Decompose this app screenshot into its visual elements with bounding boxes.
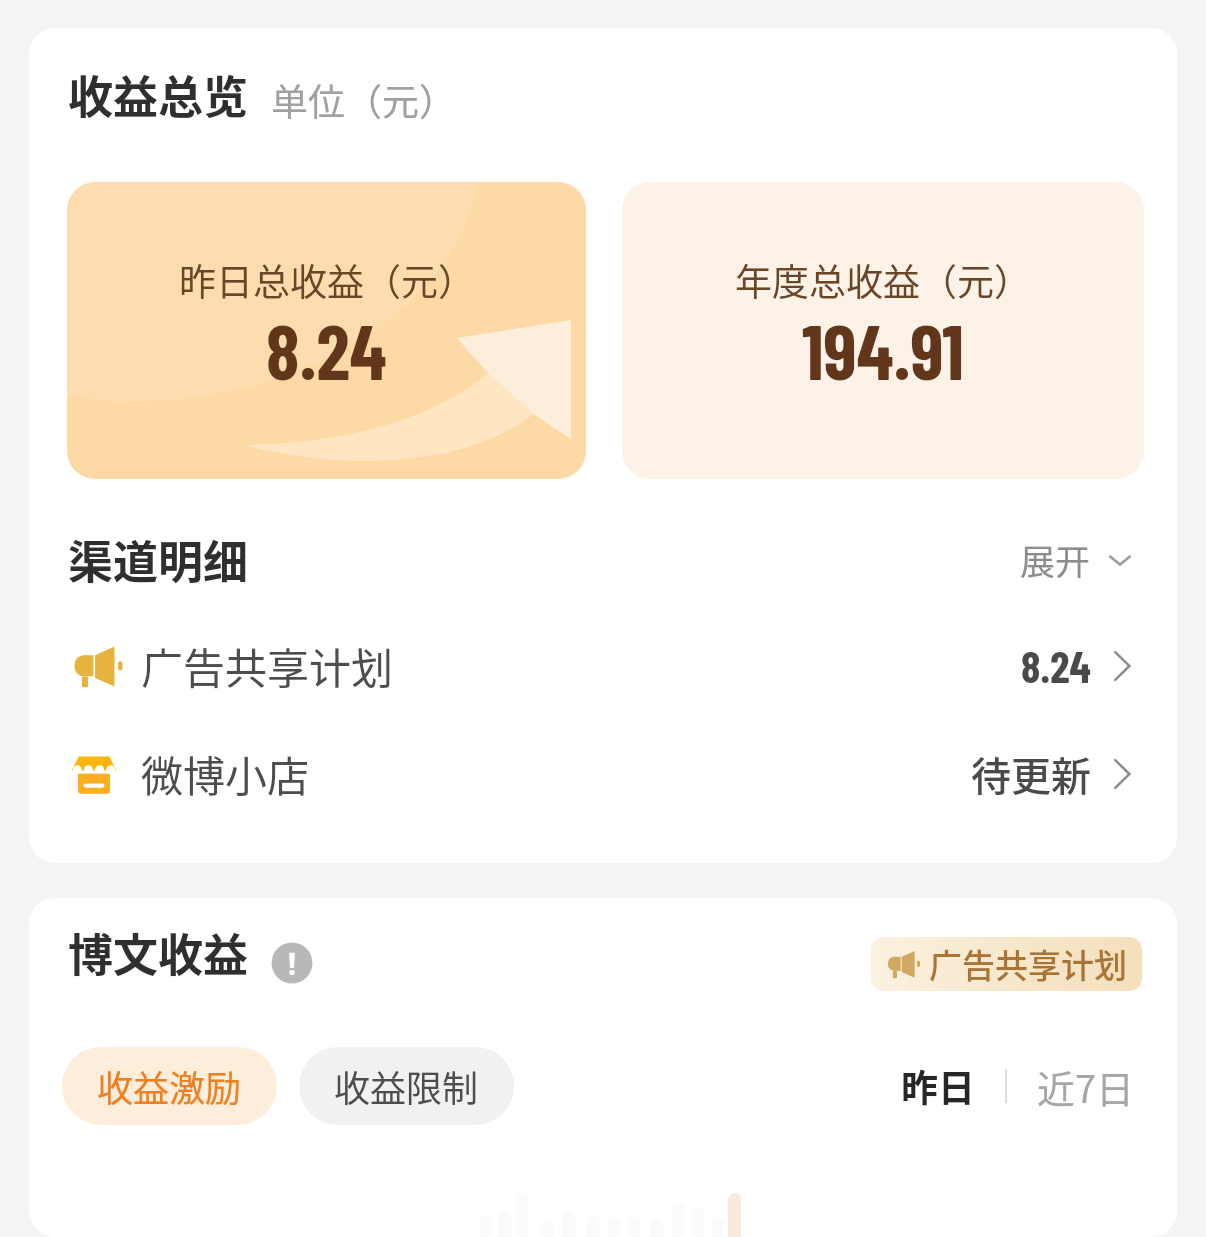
button[interactable]: 微博小店 xyxy=(29,731,1177,816)
button[interactable]: 昨日 xyxy=(893,1051,983,1121)
button[interactable]: 年度总收益（元） xyxy=(622,182,1144,479)
staticText: 广告共享计划 xyxy=(929,940,1127,988)
staticText: 渠道明细 xyxy=(68,527,249,592)
button[interactable]: 收益限制 xyxy=(299,1047,514,1125)
staticText: 待更新 xyxy=(971,745,1091,803)
staticText: 收益限制 xyxy=(334,1060,479,1112)
staticText: 近7日 xyxy=(1037,1059,1135,1114)
staticText: 收益激励 xyxy=(97,1060,242,1112)
staticText: 微博小店 xyxy=(141,743,310,804)
staticText: 博文收益 xyxy=(68,920,249,985)
staticText: 8.24 xyxy=(266,304,387,395)
staticText: 收益总览 xyxy=(68,62,249,127)
button[interactable]: 近7日 xyxy=(1029,1051,1143,1122)
button[interactable]: 昨日总收益（元） xyxy=(67,182,586,479)
staticText: 昨日 xyxy=(901,1059,975,1113)
staticText: 194.91 xyxy=(802,304,964,395)
staticText: 8.24 xyxy=(1021,639,1091,692)
staticText: 广告共享计划 xyxy=(141,635,394,696)
staticText: 年度总收益（元） xyxy=(735,253,1031,307)
staticText: 展开 xyxy=(1020,534,1091,585)
button[interactable]: 收益激励 xyxy=(62,1047,277,1125)
button[interactable]: 广告共享计划 xyxy=(29,623,1177,708)
staticText: 昨日总收益（元） xyxy=(179,253,475,307)
button[interactable]: 展开 xyxy=(1014,524,1145,595)
button[interactable]: 说明 xyxy=(270,941,314,985)
staticText: 单位（元） xyxy=(271,73,456,127)
button[interactable]: 广告共享计划 xyxy=(871,937,1142,991)
